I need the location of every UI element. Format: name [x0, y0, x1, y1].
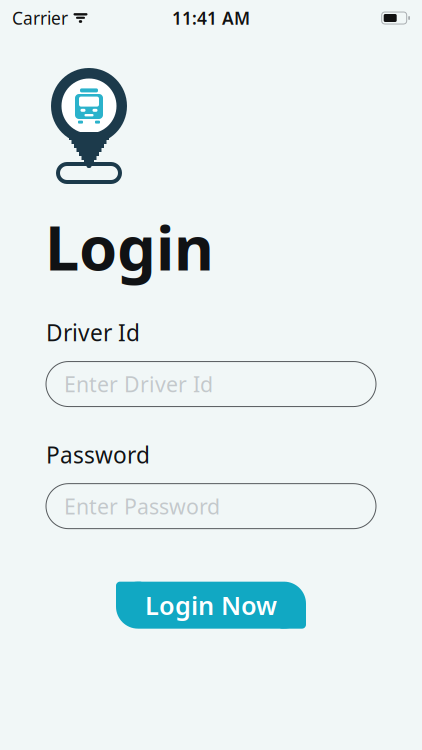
button[interactable]: Enter Password — [46, 484, 376, 529]
staticText: 11:41 AM — [172, 6, 250, 29]
staticText: Enter Password — [64, 492, 220, 520]
staticText: Password — [46, 439, 150, 470]
staticText: Driver Id — [46, 317, 140, 347]
staticText: Carrier — [12, 6, 68, 29]
staticText: Login Now — [145, 588, 277, 622]
staticText: Enter Driver Id — [64, 370, 213, 398]
button[interactable]: Enter Driver Id — [46, 361, 376, 406]
button[interactable]: Login Now — [116, 582, 306, 629]
staticText: Login — [45, 206, 214, 287]
